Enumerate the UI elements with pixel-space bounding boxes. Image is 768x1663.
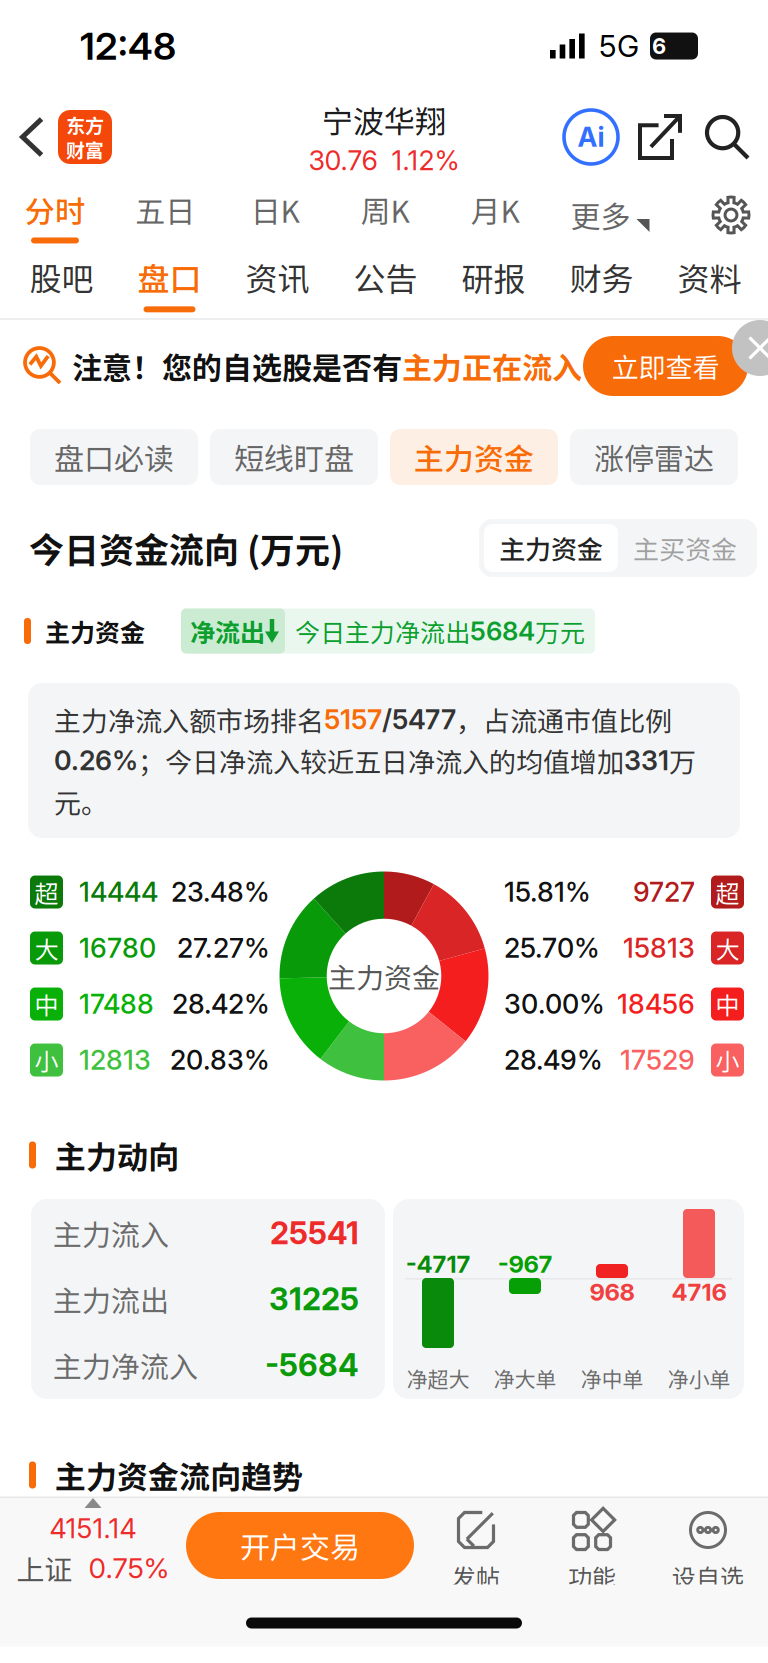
staticText: 公告 (353, 254, 417, 300)
button[interactable]: 关闭 (732, 320, 768, 358)
button[interactable]: 主买资金 (618, 524, 752, 572)
staticText: 主力资金 (499, 529, 603, 567)
staticText: 6 (652, 33, 666, 59)
button[interactable]: 更多 (550, 182, 670, 248)
staticText: 净超大 (406, 1363, 469, 1393)
button[interactable]: 月K (440, 182, 550, 248)
staticText: 今日主力净流出 (295, 613, 470, 649)
staticText: 31225 (269, 1280, 359, 1318)
button[interactable]: 股吧 (7, 248, 115, 318)
staticText: 9727 (633, 876, 695, 908)
staticText: 注意！您的自选股是否有 (72, 344, 402, 388)
staticText: 5G (599, 28, 639, 64)
staticText: 17529 (620, 1044, 695, 1076)
staticText: 27.27% (177, 932, 270, 964)
staticText: 发帖 (452, 1559, 500, 1594)
staticText: 12813 (79, 1044, 151, 1076)
button[interactable]: 盘口必读 (30, 429, 198, 485)
staticText: 盘口 (137, 254, 201, 300)
staticText: 元。 (54, 782, 108, 821)
staticText: 主力净流入额市场排名 (54, 700, 324, 739)
staticText: 主力资金 (45, 613, 145, 649)
button[interactable]: 公告 (331, 248, 439, 318)
staticText: 研报 (461, 254, 525, 300)
staticText: 短线盯盘 (234, 435, 354, 479)
staticText: 主力资金流向趋势 (55, 1453, 303, 1497)
staticText: 中 (715, 987, 739, 1021)
staticText: 日K (250, 188, 299, 231)
staticText: -967 (497, 1249, 552, 1278)
staticText: 财务 (569, 254, 633, 300)
staticText: 20.83% (170, 1044, 270, 1076)
button[interactable]: 功能 (534, 1498, 650, 1601)
staticText: 主力净流入 (53, 1344, 198, 1386)
staticText: 万元 (535, 613, 585, 649)
staticText: 净中单 (580, 1363, 643, 1393)
button[interactable]: 东方财富 (58, 110, 112, 164)
button[interactable]: 搜索 (696, 97, 758, 177)
button[interactable]: AI助手 (558, 97, 624, 177)
staticText: ，占流通市值比例 (456, 700, 672, 739)
staticText: 净大单 (493, 1363, 556, 1393)
button[interactable]: 涨停雷达 (570, 429, 738, 485)
button[interactable]: 返回 (6, 97, 58, 177)
staticText: 超 (715, 875, 739, 909)
button[interactable]: 主力资金 (390, 429, 558, 485)
staticText: 五日 (135, 188, 195, 231)
staticText: 今日资金流向 (万元) (29, 523, 343, 573)
staticText: 主力流出 (53, 1278, 169, 1320)
staticText: 上证 (16, 1548, 72, 1588)
staticText: 设自选 (672, 1559, 744, 1594)
staticText: 14444 (79, 876, 158, 908)
button[interactable]: 设自选 (650, 1498, 766, 1601)
staticText: 主力资金 (328, 956, 440, 996)
staticText: 23.48% (171, 876, 270, 908)
button[interactable]: 短线盯盘 (210, 429, 378, 485)
button[interactable]: 盘口 (115, 248, 223, 318)
staticText: Ai (577, 121, 604, 153)
staticText: 分时 (25, 188, 85, 231)
button[interactable]: 财务 (547, 248, 655, 318)
staticText: 25541 (270, 1214, 359, 1252)
staticText: 0.26% (54, 744, 138, 777)
staticText: 15813 (623, 932, 695, 964)
staticText: 立即查看 (611, 346, 719, 386)
staticText: 财富 (66, 135, 104, 163)
button[interactable]: 设置 (694, 182, 768, 248)
button[interactable]: 分时 (0, 182, 110, 248)
button[interactable]: 发帖 (418, 1498, 534, 1601)
button[interactable]: 五日 (110, 182, 220, 248)
button[interactable]: 日K (220, 182, 330, 248)
button[interactable]: 研报 (439, 248, 547, 318)
staticText: 主力动向 (55, 1133, 179, 1177)
staticText: 周K (360, 188, 409, 231)
staticText: 30.76 1.12% (308, 144, 459, 177)
staticText: 16780 (79, 932, 156, 964)
staticText: 主买资金 (633, 529, 737, 567)
staticText: 宁波华翔 (322, 97, 446, 142)
staticText: 主力正在流入 (402, 344, 582, 388)
staticText: 28.42% (172, 988, 270, 1020)
button[interactable]: 立即查看 (583, 336, 748, 396)
button[interactable]: 主力资金 (484, 524, 618, 572)
staticText: 30.00% (504, 988, 605, 1020)
staticText: 4151.14 (49, 1512, 136, 1545)
staticText: 开户交易 (240, 1524, 360, 1567)
staticText: 15.81% (504, 876, 591, 908)
button[interactable]: 分享 (624, 97, 696, 177)
staticText: -4717 (405, 1249, 470, 1278)
button[interactable]: 开户交易 (186, 1498, 414, 1601)
button[interactable]: 资讯 (223, 248, 331, 318)
staticText: 5157 (324, 703, 382, 736)
staticText: 主力流入 (53, 1212, 169, 1254)
staticText: 股吧 (29, 254, 93, 300)
staticText: 大 (715, 931, 739, 965)
staticText: 净小单 (667, 1363, 730, 1393)
staticText: 资料 (677, 254, 741, 300)
staticText: 小 (34, 1043, 58, 1077)
staticText: 17488 (79, 988, 154, 1020)
button[interactable]: 周K (330, 182, 440, 248)
staticText: 12:48 (80, 23, 176, 69)
button[interactable]: 资料 (655, 248, 763, 318)
staticText: -5684 (265, 1346, 359, 1384)
